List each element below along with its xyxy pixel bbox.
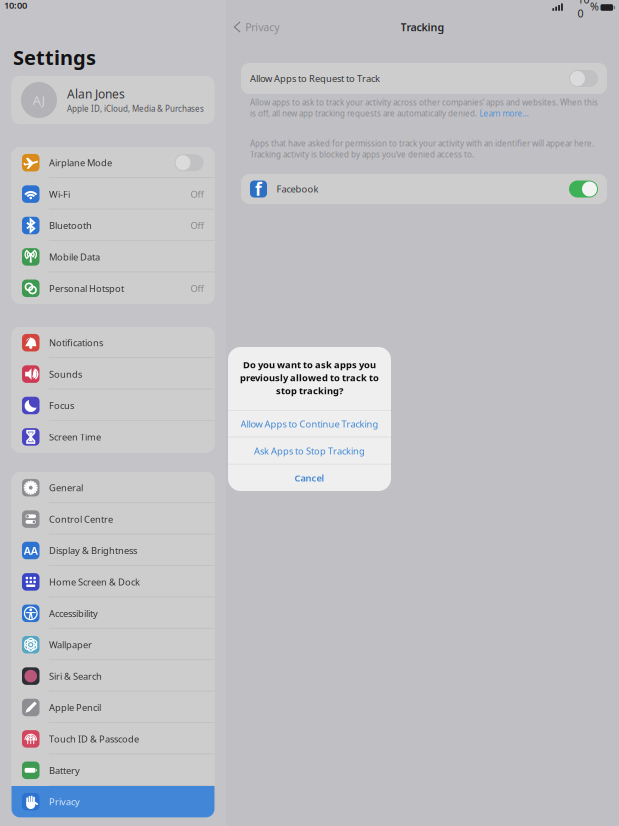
button[interactable]: Wi-Fi [11,178,214,210]
staticText: f [255,177,262,200]
button[interactable]: Allow Apps to Request to Track [241,63,607,94]
button[interactable]: Notifications [11,327,214,358]
staticText: Tracking activity is blocked by apps you… [250,149,474,160]
button[interactable]: Home Screen & Dock [11,566,214,598]
staticText: Control Centre [49,513,113,525]
staticText: Do you want to ask apps you [243,358,376,371]
staticText: Facebook [276,183,318,195]
button[interactable]: Airplane Mode [11,147,214,178]
staticText: Mobile Data [49,251,100,263]
button[interactable]: General [11,472,214,503]
staticText: Home Screen & Dock [49,576,140,588]
button[interactable]: Wallpaper [11,629,214,660]
button[interactable]: AA [11,535,214,566]
button[interactable]: Allow Apps to Continue Tracking [228,411,391,437]
staticText: previously allowed to track to [240,371,379,384]
staticText: Ask Apps to Stop Tracking [254,445,365,457]
staticText: Privacy [245,20,279,34]
staticText: Accessibility [49,607,98,619]
staticText: 100 [577,0,589,20]
button[interactable]: AJ [11,76,214,124]
button[interactable]: Sounds [11,358,214,390]
staticText: Wallpaper [49,638,92,651]
button[interactable]: Learn more… [477,108,528,119]
staticText: Wi-Fi [49,188,70,200]
staticText: Apps that have asked for permission to t… [250,138,594,149]
button[interactable]: Personal Hotspot [11,273,214,304]
button[interactable]: Apple Pencil [11,692,214,723]
staticText: Siri & Search [49,670,102,682]
button[interactable]: Privacy [11,786,214,817]
staticText: Apple Pencil [49,701,101,714]
staticText: Apple ID, iCloud, Media & Purchases [67,103,204,114]
staticText: Bluetooth [49,219,92,232]
button[interactable]: Privacy [226,16,285,38]
button[interactable]: Control Centre [11,503,214,535]
button[interactable]: f [241,174,607,204]
staticText: Display & Brightness [49,544,137,557]
button[interactable]: Battery [11,755,214,786]
staticText: Settings [13,44,96,71]
button[interactable]: Screen Time [11,421,214,453]
button[interactable]: Siri & Search [11,660,214,692]
staticText: is off, all new app tracking requests ar… [250,108,477,119]
staticText: 10:00 [4,0,27,11]
staticText: Battery [49,764,80,776]
button[interactable]: Accessibility [11,598,214,629]
staticText: Sounds [49,368,82,380]
button[interactable]: Touch ID & Passcode [11,723,214,755]
staticText: Allow Apps to Continue Tracking [240,418,378,430]
staticText: Off [190,188,203,200]
staticText: Privacy [49,795,80,808]
staticText: Off [190,282,203,294]
staticText: Tracking [400,20,444,34]
staticText: Allow apps to ask to track your activity… [250,97,598,108]
staticText: Learn more… [479,108,528,119]
staticText: AA [24,543,38,558]
staticText: Cancel [294,472,324,484]
button[interactable]: Bluetooth [11,210,214,241]
button[interactable]: Ask Apps to Stop Tracking [228,437,391,464]
staticText: General [49,481,83,494]
staticText: Focus [49,399,74,412]
staticText: AJ [32,91,45,109]
staticText: Personal Hotspot [49,282,124,294]
staticText: Airplane Mode [49,156,112,169]
staticText: Screen Time [49,431,101,443]
staticText: Touch ID & Passcode [49,733,139,745]
staticText: % [590,0,599,13]
staticText: Notifications [49,336,103,349]
button[interactable]: Focus [11,390,214,421]
button[interactable]: Mobile Data [11,241,214,273]
staticText: Allow Apps to Request to Track [250,72,380,85]
staticText: Off [190,219,203,232]
staticText: stop tracking? [276,384,343,397]
staticText: Alan Jones [67,86,125,102]
button[interactable]: Cancel [228,464,391,491]
